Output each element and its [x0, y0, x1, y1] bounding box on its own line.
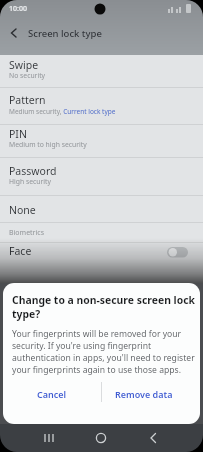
- staticText: Biometrics: [9, 228, 45, 238]
- button[interactable]: [0, 200, 203, 230]
- staticText: Your fingerprints will be removed for yo…: [12, 328, 182, 340]
- staticText: Password: [9, 164, 57, 178]
- button[interactable]: [0, 90, 203, 120]
- staticText: Face: [9, 244, 32, 258]
- staticText: Swipe: [9, 58, 39, 72]
- staticText: Medium security, Current lock type: [9, 107, 116, 116]
- staticText: security. If you're using fingerprint: [12, 340, 152, 352]
- staticText: Change to a non-secure screen lock: [12, 293, 195, 307]
- button[interactable]: Cancel: [3, 379, 101, 409]
- staticText: 10:00: [9, 4, 27, 14]
- button[interactable]: Remove data: [95, 379, 193, 409]
- staticText: PIN: [9, 127, 27, 141]
- staticText: Screen lock type: [28, 27, 102, 40]
- button[interactable]: [0, 22, 203, 46]
- button[interactable]: [0, 161, 203, 191]
- staticText: Medium to high security: [9, 140, 87, 149]
- staticText: None: [9, 203, 36, 217]
- staticText: your fingerprints again to use those app…: [12, 364, 182, 376]
- button[interactable]: [0, 55, 203, 85]
- staticText: authentication in apps, you'll need to r…: [12, 352, 195, 364]
- staticText: Cancel: [37, 388, 67, 400]
- staticText: Pattern: [9, 93, 46, 107]
- staticText: High security: [9, 177, 51, 186]
- button[interactable]: [0, 124, 203, 154]
- staticText: Remove data: [115, 388, 173, 400]
- button[interactable]: [142, 427, 164, 449]
- staticText: No security: [9, 71, 46, 80]
- staticText: type?: [12, 307, 41, 321]
- button[interactable]: [38, 427, 60, 449]
- button[interactable]: [90, 427, 112, 449]
- button[interactable]: [0, 241, 203, 271]
